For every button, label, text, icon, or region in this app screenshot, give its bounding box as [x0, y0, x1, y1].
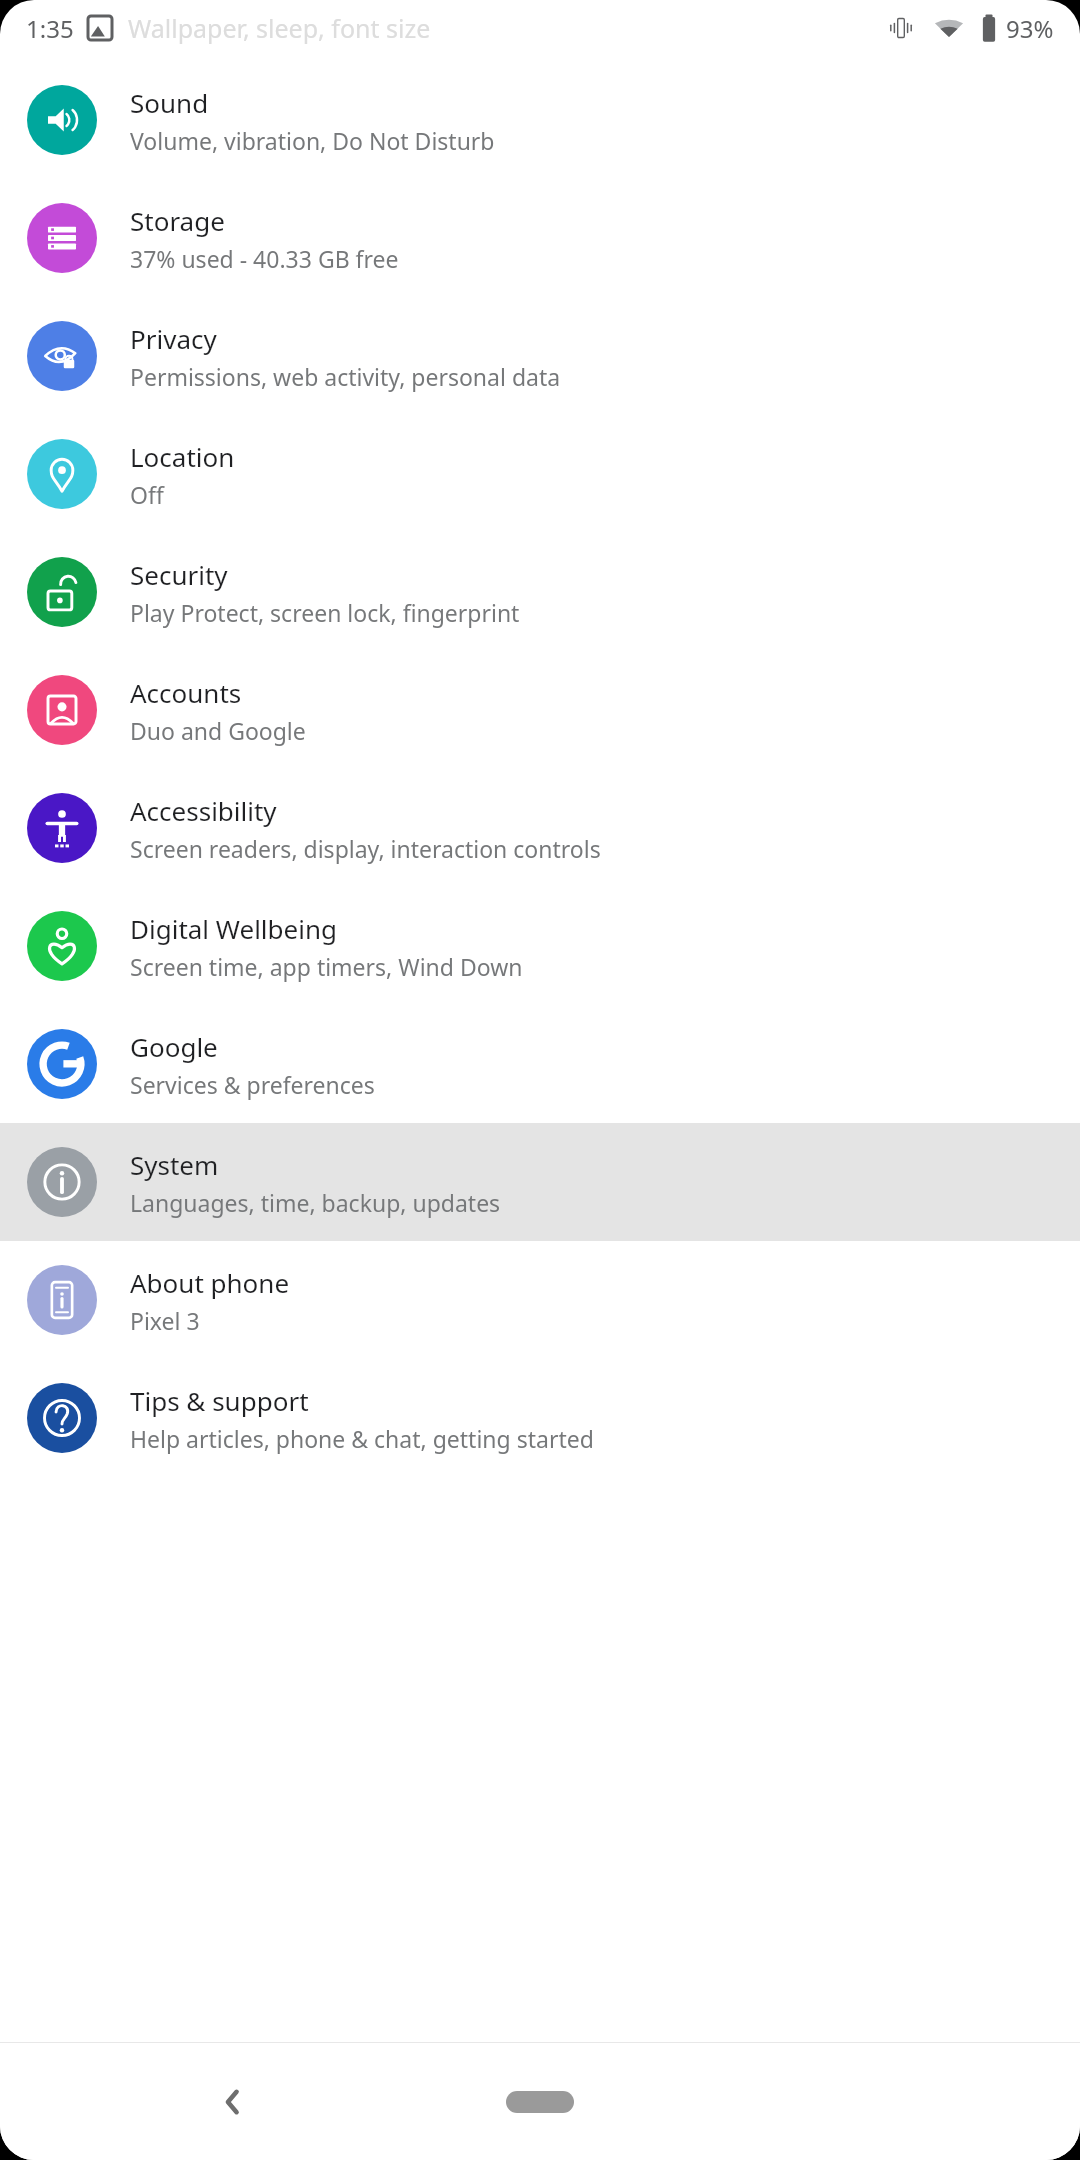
staticText: Permissions, web activity, personal data — [130, 361, 561, 392]
button[interactable]: Privacy — [0, 297, 1080, 415]
button[interactable]: Security — [0, 533, 1080, 651]
button[interactable]: Back — [200, 2069, 266, 2135]
button[interactable]: Google — [0, 1005, 1080, 1123]
staticText: Screen time, app timers, Wind Down — [130, 951, 523, 982]
button[interactable]: About phone — [0, 1241, 1080, 1359]
staticText: System — [130, 1147, 219, 1182]
staticText: Play Protect, screen lock, fingerprint — [130, 597, 520, 628]
staticText: 37% used - 40.33 GB free — [130, 243, 399, 274]
staticText: Security — [130, 557, 228, 592]
staticText: Duo and Google — [130, 715, 306, 746]
button[interactable]: Tips & support — [0, 1359, 1080, 1477]
staticText: Help articles, phone & chat, getting sta… — [130, 1423, 594, 1454]
staticText: Wallpaper, sleep, font size — [128, 11, 431, 45]
staticText: Sound — [130, 85, 209, 120]
staticText: 93% — [1006, 12, 1054, 45]
button[interactable]: Digital Wellbeing — [0, 887, 1080, 1005]
staticText: Storage — [130, 203, 225, 238]
staticText: Digital Wellbeing — [130, 911, 337, 946]
button[interactable]: Sound — [0, 61, 1080, 179]
staticText: Privacy — [130, 321, 217, 356]
button[interactable]: System — [0, 1123, 1080, 1241]
button[interactable]: Storage — [0, 179, 1080, 297]
staticText: Accessibility — [130, 793, 277, 828]
staticText: About phone — [130, 1265, 290, 1300]
staticText: Tips & support — [130, 1383, 309, 1418]
staticText: Location — [130, 439, 235, 474]
button[interactable]: Accounts — [0, 651, 1080, 769]
staticText: Accounts — [130, 675, 242, 710]
button[interactable]: Location — [0, 415, 1080, 533]
staticText: Screen readers, display, interaction con… — [130, 833, 601, 864]
staticText: Google — [130, 1029, 218, 1064]
button[interactable]: Home — [490, 2077, 590, 2127]
staticText: Pixel 3 — [130, 1305, 200, 1336]
staticText: Volume, vibration, Do Not Disturb — [130, 125, 495, 156]
staticText: Off — [130, 479, 164, 510]
staticText: 1:35 — [26, 12, 74, 45]
button[interactable]: Accessibility — [0, 769, 1080, 887]
staticText: Languages, time, backup, updates — [130, 1187, 501, 1218]
staticText: Services & preferences — [130, 1069, 375, 1100]
